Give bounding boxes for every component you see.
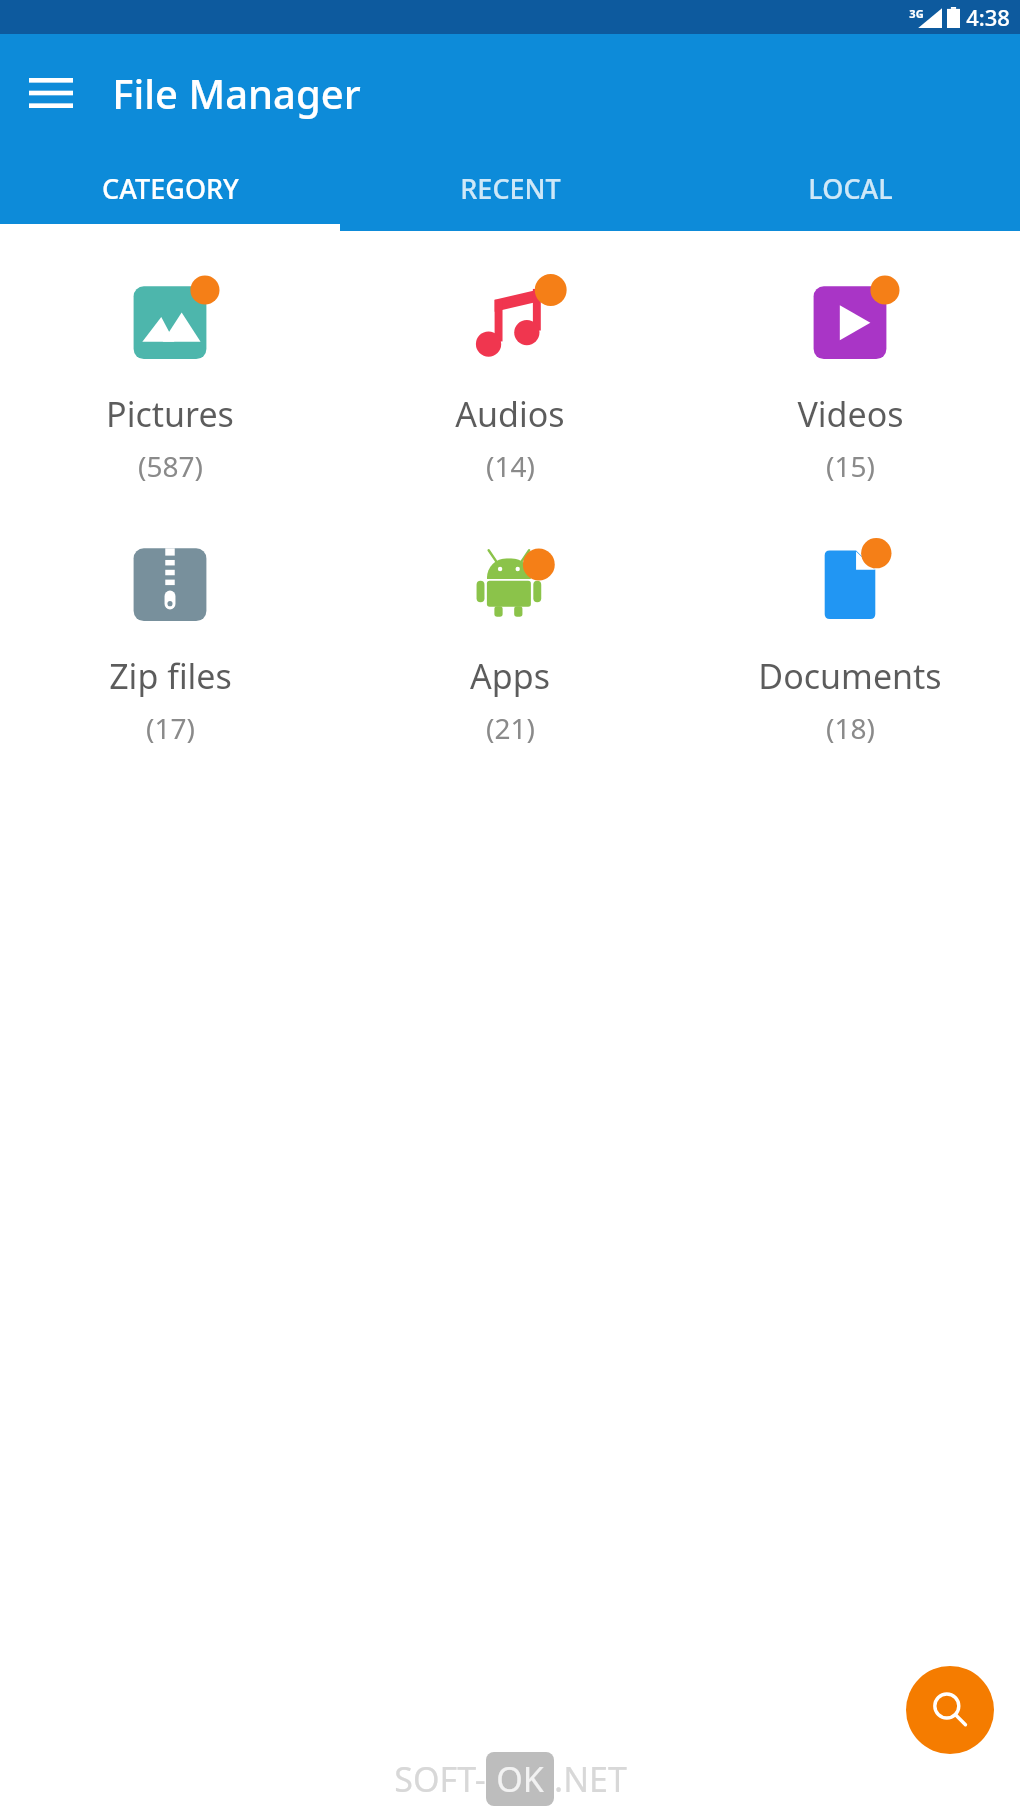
staticText: 3G (909, 6, 924, 21)
staticText: (17) (146, 709, 195, 747)
button[interactable]: CATEGORY (0, 152, 340, 224)
staticText: Audios (455, 391, 565, 437)
button[interactable]: Pictures (0, 265, 340, 485)
staticText: OK (496, 1756, 544, 1802)
button[interactable]: Open navigation menu (22, 64, 80, 122)
staticText: File Manager (112, 66, 361, 120)
staticText: (14) (486, 447, 535, 485)
staticText: Videos (797, 391, 904, 437)
staticText: (587) (138, 447, 203, 485)
staticText: (21) (486, 709, 535, 747)
staticText: Pictures (106, 391, 234, 437)
button[interactable]: Audios (340, 265, 680, 485)
staticText: CATEGORY (102, 170, 239, 207)
staticText: RECENT (460, 170, 561, 207)
staticText: Documents (758, 653, 942, 699)
staticText: 4:38 (966, 2, 1010, 32)
staticText: SOFT- (394, 1756, 486, 1802)
staticText: Zip files (109, 653, 232, 699)
button[interactable]: Documents (680, 527, 1020, 747)
button[interactable]: LOCAL (680, 152, 1020, 224)
staticText: (18) (826, 709, 875, 747)
button[interactable]: Videos (680, 265, 1020, 485)
button[interactable]: RECENT (340, 152, 680, 224)
button[interactable]: Zip files (0, 527, 340, 747)
staticText: (15) (826, 447, 875, 485)
staticText: LOCAL (808, 170, 893, 207)
staticText: Apps (470, 653, 550, 699)
staticText: .NET (554, 1756, 627, 1802)
button[interactable]: Apps (340, 527, 680, 747)
button[interactable]: Search (906, 1666, 994, 1754)
